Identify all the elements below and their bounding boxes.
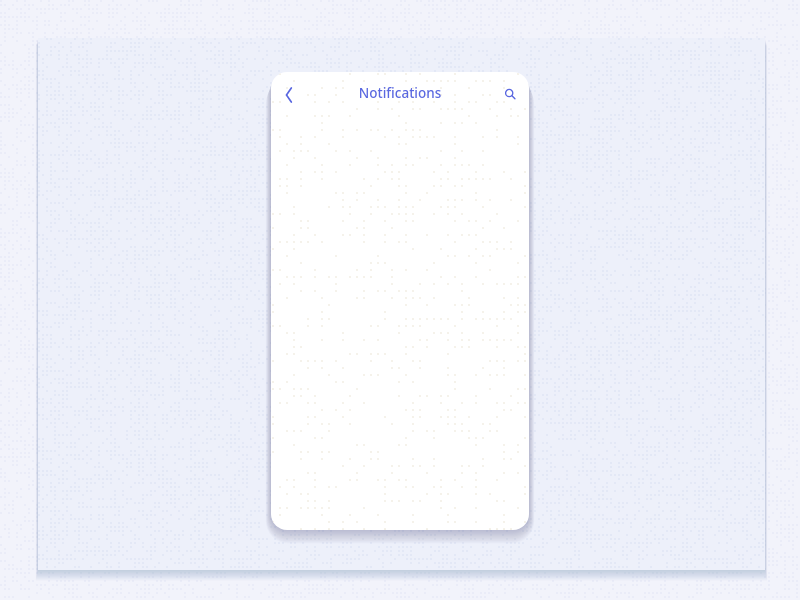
button[interactable]: Back (275, 81, 303, 109)
staticText: Notifications (320, 84, 480, 530)
button[interactable]: Search (497, 81, 523, 107)
